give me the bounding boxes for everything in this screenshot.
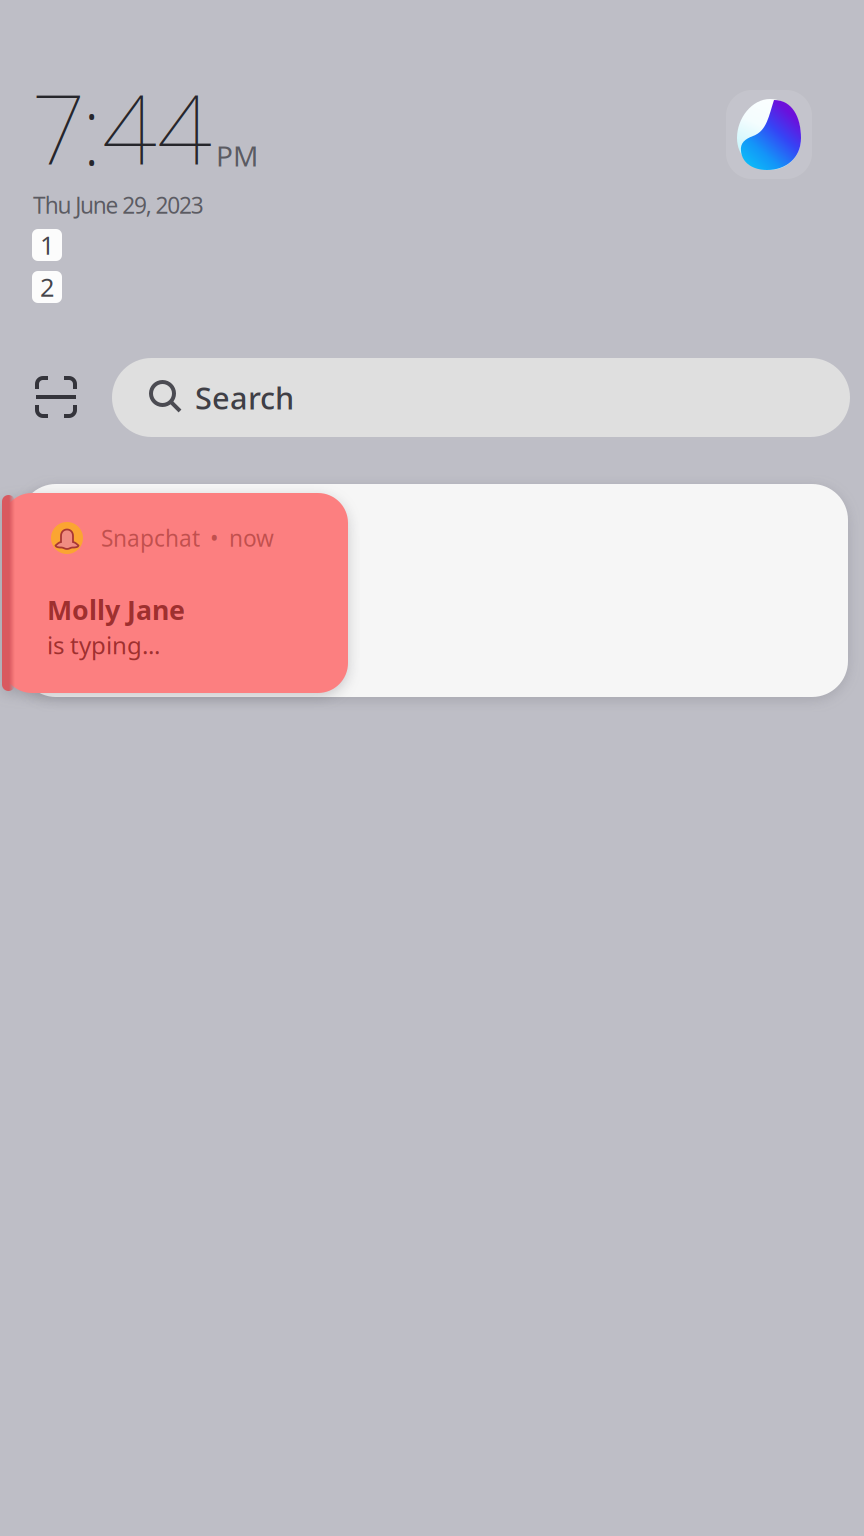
staticText: is typing... bbox=[47, 629, 160, 661]
button[interactable]: 1 notification bbox=[32, 229, 62, 261]
staticText: Snapchat • now bbox=[101, 523, 274, 553]
staticText: 1 bbox=[40, 228, 54, 262]
button[interactable]: Scan bbox=[22, 363, 90, 431]
staticText: Molly Jane bbox=[47, 592, 185, 627]
staticText: Search bbox=[195, 377, 294, 418]
staticText: PM bbox=[216, 137, 258, 174]
staticText: Thu June 29, 2023 bbox=[33, 190, 204, 220]
button[interactable]: Assistant bbox=[726, 90, 812, 179]
staticText: 7 bbox=[31, 64, 86, 191]
button[interactable]: 2 notifications bbox=[32, 271, 62, 303]
staticText: 2 bbox=[40, 270, 54, 304]
button[interactable]: Snapchat notification bbox=[20, 484, 848, 697]
staticText: 44 bbox=[102, 64, 212, 191]
staticText: : bbox=[81, 64, 102, 191]
button[interactable]: Snapchat • now bbox=[2, 493, 348, 693]
button[interactable]: Search bbox=[112, 358, 850, 437]
